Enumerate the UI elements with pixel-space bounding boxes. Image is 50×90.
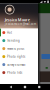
button[interactable]: Trending xyxy=(0,37,38,45)
button[interactable]: Back xyxy=(7,84,14,90)
staticText: Photo lists xyxy=(7,71,22,74)
staticText: Survey estimate xyxy=(7,63,26,66)
button[interactable]: Recents xyxy=(36,84,43,90)
staticText: Newest posts xyxy=(7,47,24,50)
button[interactable]: Survey estimate xyxy=(0,61,38,69)
staticText: Trending xyxy=(7,39,20,42)
button[interactable]: Hot xyxy=(0,29,38,37)
button[interactable]: Home xyxy=(21,84,28,90)
button[interactable]: Newest posts xyxy=(0,45,38,53)
staticText: Jessica Moore xyxy=(5,17,30,22)
staticText: Photo rights xyxy=(7,55,25,58)
staticText: jessica.moore@mail.com xyxy=(5,22,36,26)
button[interactable]: Photo rights xyxy=(0,53,38,61)
staticText: Hot xyxy=(7,31,12,34)
button[interactable]: Photo lists xyxy=(0,69,38,77)
